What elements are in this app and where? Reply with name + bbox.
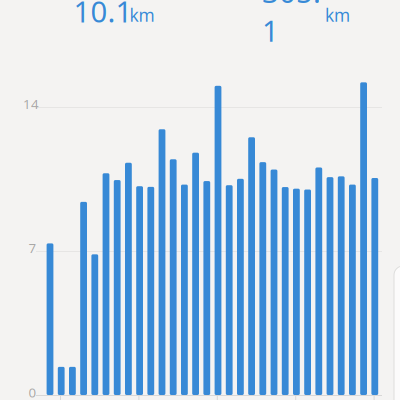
staticText: 0 (28, 383, 36, 400)
button[interactable]: 10.1 (0, 0, 82, 32)
button[interactable]: Daily distance chart, last 30 days (0, 0, 388, 400)
staticText: km (325, 3, 350, 26)
staticText: 305.1 (262, 0, 321, 50)
staticText: km (129, 3, 154, 26)
button[interactable]: Next chart (0, 0, 60, 150)
button[interactable]: 305.1 (0, 0, 100, 32)
staticText: 7 (28, 239, 36, 257)
staticText: 10.1 (73, 0, 132, 30)
staticText: 14 (23, 95, 39, 113)
